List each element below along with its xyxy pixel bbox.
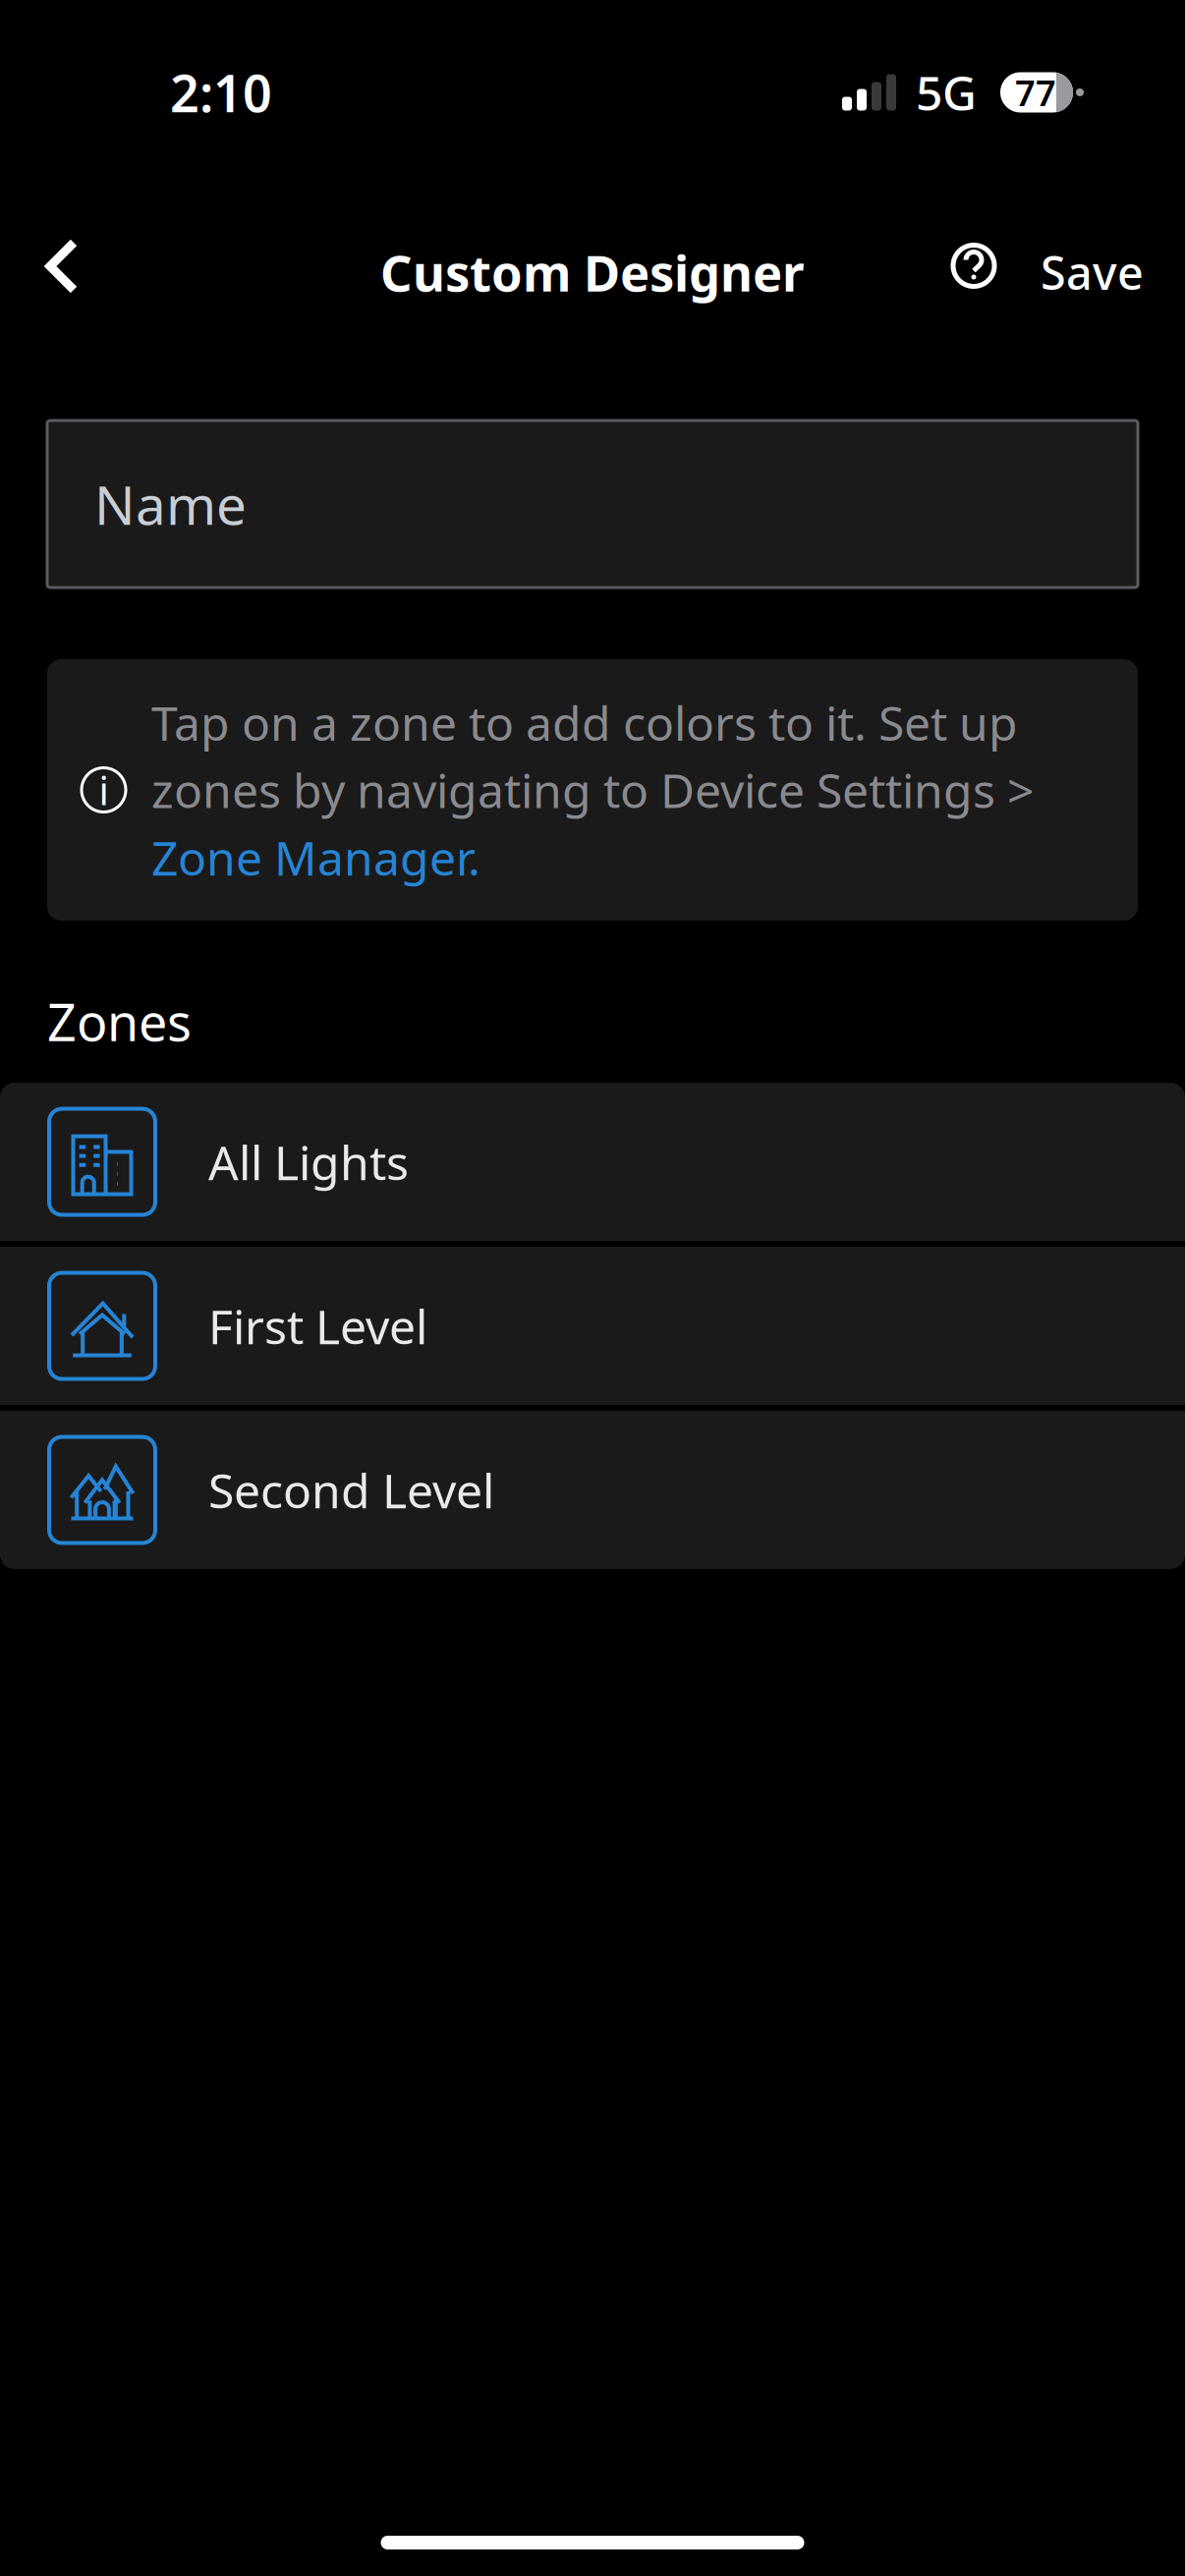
button[interactable]: Save [1017, 220, 1185, 324]
staticText: Zone Manager. [151, 826, 480, 889]
staticText: zones by navigating to Device Settings > [151, 759, 1034, 821]
button[interactable]: Help [934, 220, 1017, 324]
staticText: Custom Designer [380, 239, 805, 305]
staticText: Name [94, 468, 247, 540]
button[interactable]: First Level [0, 1247, 1185, 1405]
staticText: i [99, 764, 109, 816]
staticText: All Lights [208, 1131, 409, 1193]
staticText: 2:10 [170, 58, 272, 126]
staticText: Zones [47, 987, 192, 1055]
staticText: 5G [916, 61, 977, 124]
staticText: First Level [208, 1295, 427, 1357]
staticText: Save [1041, 242, 1144, 303]
button[interactable]: Back [0, 220, 120, 324]
staticText: 77 [1015, 69, 1056, 116]
button[interactable]: Second Level [0, 1411, 1185, 1569]
staticText: Second Level [208, 1459, 494, 1521]
button[interactable]: All Lights [0, 1083, 1185, 1241]
staticText: Tap on a zone to add colors to it. Set u… [151, 691, 1018, 754]
